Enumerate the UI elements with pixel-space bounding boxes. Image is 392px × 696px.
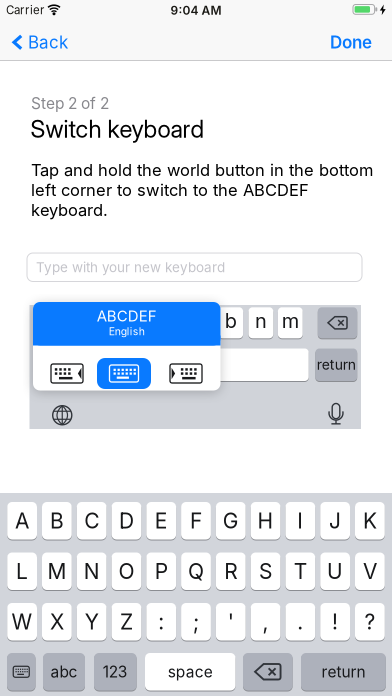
staticText: b — [225, 309, 237, 333]
button[interactable]: Type with your new keyboard — [27, 253, 362, 281]
staticText: Type with your new keyboard — [36, 259, 225, 275]
button[interactable]: W — [7, 603, 37, 640]
staticText: H — [258, 508, 274, 533]
button[interactable]: L — [7, 552, 37, 590]
button[interactable]: ! — [320, 603, 350, 640]
staticText: Done — [330, 32, 372, 53]
button[interactable]: Keyboard — [7, 653, 35, 690]
staticText: ABCDEF — [97, 307, 157, 325]
button[interactable]: M — [42, 552, 72, 590]
staticText: Tap and hold the world button in the bot… — [31, 160, 373, 220]
staticText: Switch keyboard — [30, 114, 204, 143]
button[interactable]: : — [146, 603, 176, 640]
staticText: : — [158, 609, 164, 634]
button[interactable]: Z — [111, 603, 141, 640]
button[interactable]: ; — [181, 603, 211, 640]
button[interactable]: D — [111, 502, 141, 539]
staticText: ? — [364, 609, 375, 634]
staticText: ; — [193, 609, 199, 634]
staticText: n — [255, 309, 267, 333]
staticText: A — [15, 508, 29, 533]
staticText: R — [224, 558, 237, 584]
staticText: , — [263, 609, 269, 634]
staticText: U — [327, 558, 343, 584]
staticText: L — [16, 558, 28, 584]
button[interactable]: return — [301, 653, 386, 690]
button[interactable]: J — [320, 502, 350, 539]
staticText: K — [363, 508, 377, 533]
staticText: ' — [228, 609, 234, 634]
button[interactable]: V — [355, 552, 385, 590]
staticText: Step 2 of 2 — [31, 94, 109, 113]
staticText: X — [50, 609, 64, 634]
staticText: D — [119, 508, 134, 533]
button[interactable]: abc — [43, 653, 85, 690]
button[interactable]: O — [111, 552, 141, 590]
button[interactable]: H — [251, 502, 280, 539]
staticText: Z — [120, 609, 133, 634]
staticText: S — [259, 558, 272, 584]
staticText: Y — [85, 609, 99, 634]
staticText: B — [50, 508, 64, 533]
staticText: ! — [332, 609, 338, 634]
button[interactable]: Back — [12, 32, 68, 53]
staticText: I — [297, 508, 303, 533]
button[interactable]: A — [7, 502, 37, 539]
button[interactable]: P — [146, 552, 176, 590]
button[interactable]: . — [285, 603, 315, 640]
button[interactable]: U — [320, 552, 350, 590]
staticText: E — [155, 508, 168, 533]
staticText: Carrier — [6, 3, 44, 17]
staticText: . — [297, 609, 303, 634]
button[interactable]: space — [145, 653, 235, 690]
button[interactable]: I — [285, 502, 315, 539]
button[interactable]: Delete — [243, 653, 293, 690]
button[interactable]: R — [216, 552, 246, 590]
staticText: return — [317, 356, 356, 373]
staticText: English — [109, 325, 145, 338]
staticText: Q — [188, 558, 204, 584]
staticText: V — [363, 558, 377, 584]
button[interactable]: B — [42, 502, 72, 539]
staticText: return — [321, 662, 365, 681]
button[interactable]: , — [251, 603, 280, 640]
staticText: C — [84, 508, 99, 533]
staticText: abc — [50, 662, 77, 681]
button[interactable]: ' — [216, 603, 246, 640]
button[interactable]: Q — [181, 552, 211, 590]
staticText: G — [223, 508, 239, 533]
staticText: F — [190, 508, 202, 533]
button[interactable]: 123 — [94, 653, 137, 690]
button[interactable]: Done — [330, 32, 372, 53]
button[interactable]: E — [146, 502, 176, 539]
button[interactable]: F — [181, 502, 211, 539]
staticText: W — [12, 609, 33, 634]
staticText: space — [168, 662, 213, 681]
button[interactable]: Y — [77, 603, 107, 640]
button[interactable]: X — [42, 603, 72, 640]
button[interactable]: ? — [355, 603, 385, 640]
button[interactable]: T — [285, 552, 315, 590]
staticText: M — [47, 558, 66, 584]
staticText: J — [329, 508, 341, 533]
button[interactable]: C — [77, 502, 107, 539]
staticText: 9:04 AM — [170, 3, 221, 17]
staticText: m — [282, 309, 299, 333]
staticText: Back — [28, 32, 68, 53]
staticText: P — [155, 558, 168, 584]
staticText: O — [118, 558, 134, 584]
button[interactable]: G — [216, 502, 246, 539]
staticText: T — [294, 558, 307, 584]
button[interactable]: K — [355, 502, 385, 539]
staticText: 123 — [103, 662, 128, 681]
button[interactable]: N — [77, 552, 107, 590]
staticText: N — [84, 558, 100, 584]
button[interactable]: S — [251, 552, 280, 590]
